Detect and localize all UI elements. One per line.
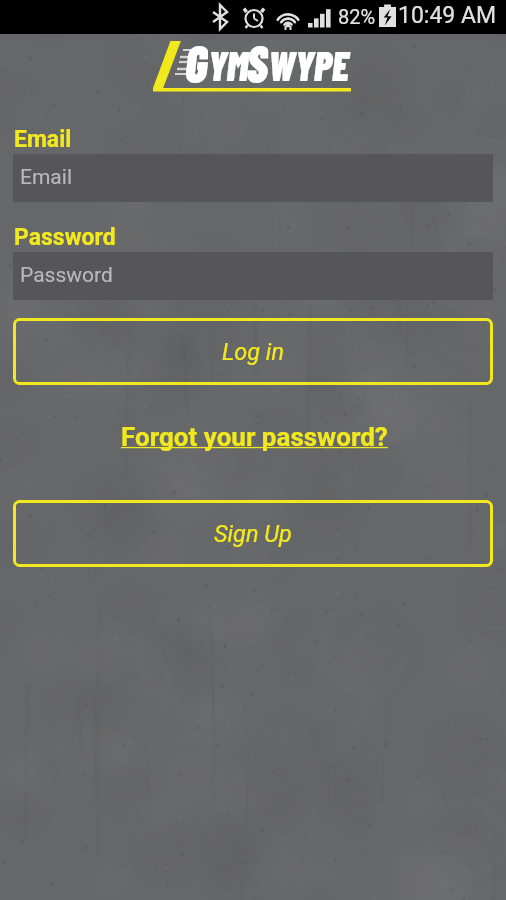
staticText: Forgot your password?: [121, 422, 388, 452]
staticText: Password: [20, 263, 113, 288]
button[interactable]: Password: [13, 252, 493, 300]
staticText: Password: [14, 224, 116, 251]
staticText: Sign Up: [214, 520, 292, 548]
staticText: Email: [14, 126, 72, 153]
button[interactable]: Log in: [13, 318, 493, 385]
staticText: WYPE: [268, 39, 349, 89]
button[interactable]: Forgot your password?: [115, 418, 394, 456]
staticText: G: [185, 30, 208, 92]
staticText: 82%: [338, 5, 376, 28]
button[interactable]: Sign Up: [13, 500, 493, 567]
staticText: Log in: [222, 338, 284, 366]
staticText: S: [246, 30, 268, 92]
staticText: YM: [208, 39, 248, 89]
other: GymSwype: [0, 34, 506, 96]
button[interactable]: Email: [13, 154, 493, 202]
staticText: Email: [20, 165, 72, 190]
staticText: 10:49 AM: [398, 2, 497, 29]
